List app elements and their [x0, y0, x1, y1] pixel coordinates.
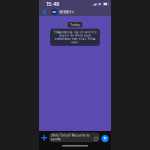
staticText: Telcel [59, 9, 71, 15]
staticText: Esta empresa usa un servicio seguro de M… [53, 30, 96, 44]
button[interactable]: Stickers [94, 137, 98, 141]
button[interactable]: Send [101, 135, 109, 142]
staticText: Today [70, 23, 80, 27]
button[interactable]: Back [42, 8, 48, 16]
button[interactable]: Add attachment [41, 135, 47, 142]
staticText: 15:48 [46, 1, 59, 7]
staticText: ¡Hola Telcel! Necesito tu ayuda [51, 133, 90, 141]
